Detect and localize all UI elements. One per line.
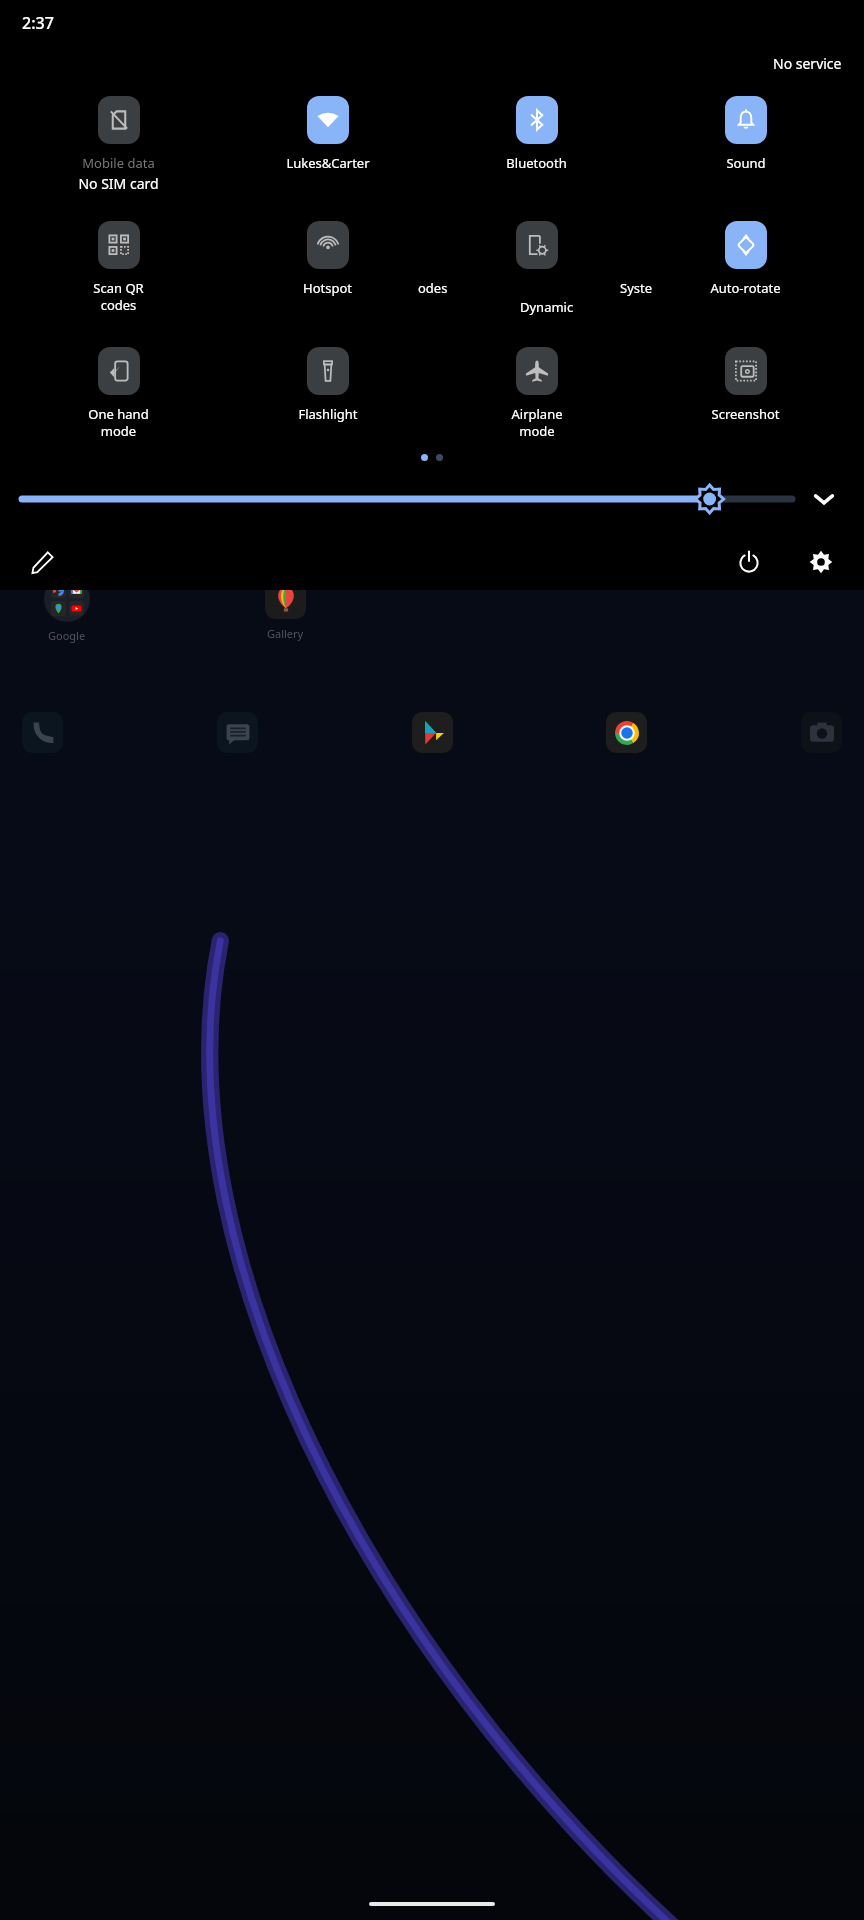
button[interactable]: odes [432, 221, 641, 319]
staticText: Scan QR codes [93, 279, 144, 314]
staticText: One hand mode [88, 405, 149, 440]
button[interactable]: Scan QR codes [93, 221, 144, 314]
staticText: Flashlight [298, 405, 358, 423]
staticText: Lukes&Carter [286, 154, 370, 172]
staticText: Dynamic [520, 298, 574, 316]
button[interactable]: Bluetooth [506, 96, 567, 172]
button[interactable]: Airplane mode [511, 347, 563, 440]
staticText: Screenshot [711, 405, 780, 423]
button[interactable]: Hotspot [303, 221, 352, 297]
staticText: Auto-rotate [710, 279, 781, 297]
button[interactable]: Sound [725, 96, 767, 172]
button[interactable] [22, 712, 63, 753]
staticText: No SIM card [78, 174, 159, 193]
staticText: Mobile data [82, 154, 155, 172]
button[interactable]: One hand mode [88, 347, 149, 440]
button[interactable]: Mobile data [78, 96, 159, 193]
button[interactable]: Auto-rotate [710, 221, 781, 297]
button[interactable]: Lukes&Carter [286, 96, 370, 172]
staticText: Sound [726, 154, 766, 172]
staticText: Hotspot [303, 279, 352, 297]
staticText: Bluetooth [506, 154, 567, 172]
button[interactable]: Screenshot [711, 347, 780, 423]
button[interactable] [801, 712, 842, 753]
button[interactable] [606, 712, 647, 753]
staticText: Gallery [267, 626, 304, 641]
button[interactable] [412, 712, 453, 753]
button[interactable] [22, 484, 792, 514]
button[interactable] [217, 712, 258, 753]
staticText: Google [48, 628, 86, 643]
staticText: Airplane mode [511, 405, 563, 440]
staticText: 2:37 [22, 12, 54, 34]
button[interactable]: Flashlight [298, 347, 358, 423]
button[interactable] [265, 578, 306, 619]
button[interactable]: Power [728, 541, 770, 583]
button[interactable]: Settings [800, 541, 842, 583]
staticText: Syste [620, 279, 653, 297]
button[interactable] [44, 576, 90, 622]
staticText: odes [418, 279, 448, 297]
button[interactable]: Expand [806, 481, 842, 517]
staticText: No service [773, 54, 842, 73]
button[interactable]: Edit tiles [22, 541, 64, 583]
